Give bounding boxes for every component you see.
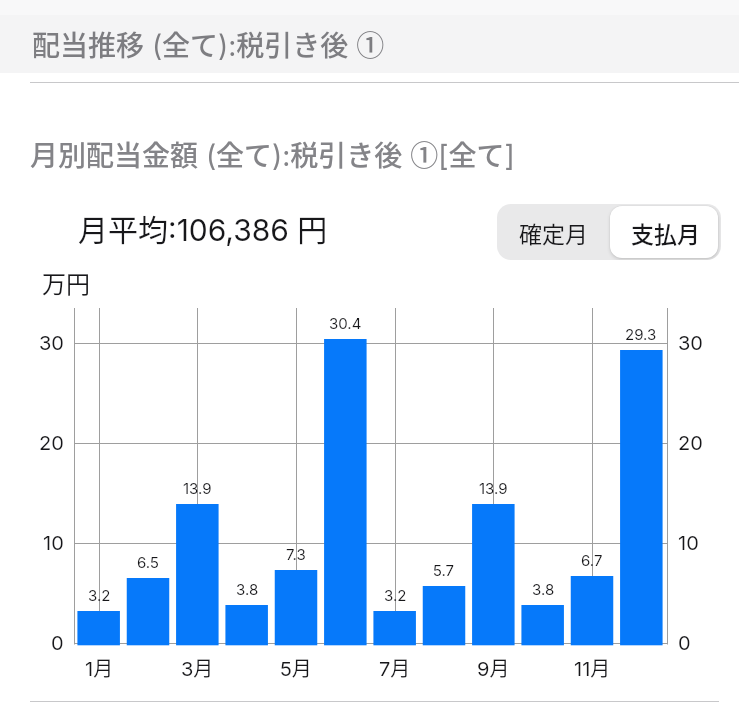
button[interactable]: 支払月 [609, 204, 721, 260]
staticText: 20 [39, 431, 64, 455]
staticText: 20 [678, 431, 703, 455]
staticText: 0 [678, 631, 691, 655]
staticText: 確定月 [519, 216, 588, 249]
button[interactable]: 確定月 [497, 204, 609, 260]
staticText: 30 [39, 331, 64, 355]
staticText: 6.5 [137, 553, 159, 571]
staticText: 10 [43, 531, 64, 555]
staticText: 11月 [574, 653, 611, 682]
staticText: 1月 [85, 653, 114, 682]
staticText: 支払月 [631, 216, 700, 249]
staticText: 0 [51, 631, 64, 655]
staticText: 30 [678, 331, 703, 355]
staticText: 29.3 [625, 325, 657, 343]
staticText: 6.7 [581, 551, 603, 569]
staticText: 9月 [477, 653, 510, 682]
staticText: 3.2 [88, 586, 111, 604]
staticText: 配当推移 (全て):税引き後 ① [32, 24, 385, 65]
staticText: 13.9 [183, 479, 212, 497]
staticText: 万円 [42, 265, 90, 300]
staticText: 13.9 [479, 479, 508, 497]
staticText: 7.3 [286, 545, 306, 563]
staticText: 5月 [280, 653, 312, 682]
staticText: 7月 [379, 653, 411, 682]
staticText: 3.8 [532, 580, 555, 598]
staticText: 3.2 [384, 586, 407, 604]
staticText: 30.4 [329, 314, 362, 332]
staticText: 月別配当金額 (全て):税引き後 ①[全て] [30, 134, 515, 175]
staticText: 10 [678, 531, 699, 555]
staticText: 3月 [181, 653, 214, 682]
staticText: 月平均:106,386 円 [78, 206, 328, 249]
button[interactable]: 配当推移 (全て):税引き後 ① [0, 0, 739, 73]
staticText: 5.7 [433, 561, 455, 579]
staticText: 3.8 [236, 580, 259, 598]
